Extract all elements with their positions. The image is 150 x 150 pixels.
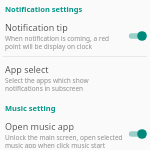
- staticText: When notification is coming, a red point…: [5, 34, 123, 51]
- staticText: Open music app: [5, 120, 74, 132]
- staticText: Music setting: [5, 103, 56, 113]
- staticText: Notification settings: [5, 4, 83, 14]
- staticText: Select the apps which show notifications…: [5, 76, 123, 93]
- staticText: App select: [5, 63, 49, 75]
- button[interactable]: Notification tip: [0, 19, 150, 53]
- button[interactable]: Toggle notification tip: [126, 28, 148, 44]
- button[interactable]: Open music app: [0, 118, 150, 150]
- staticText: Notification tip: [5, 21, 68, 33]
- button[interactable]: Toggle open music app: [126, 126, 148, 142]
- button[interactable]: App select: [0, 61, 150, 95]
- staticText: Unlock the main screen, open selected mu…: [5, 133, 123, 148]
